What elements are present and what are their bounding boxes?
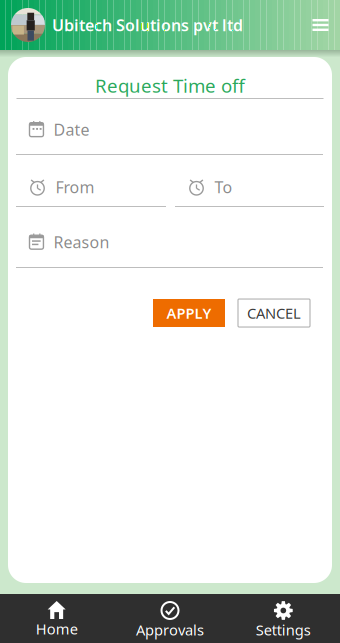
- staticText: CANCEL: [247, 303, 301, 323]
- staticText: Request Time off: [95, 73, 245, 98]
- staticText: APPLY: [166, 303, 211, 323]
- staticText: To: [214, 176, 232, 198]
- button[interactable]: CANCEL: [238, 299, 310, 327]
- staticText: Reason: [53, 231, 109, 253]
- staticText: Date: [53, 119, 89, 140]
- button[interactable]: Home: [0, 594, 113, 643]
- staticText: Ubitech Solutions pvt ltd: [52, 14, 243, 36]
- button[interactable]: Menu: [301, 0, 340, 50]
- button[interactable]: APPLY: [153, 299, 225, 327]
- button[interactable]: Settings: [227, 594, 340, 643]
- staticText: From: [55, 176, 94, 198]
- staticText: Settings: [256, 620, 311, 639]
- staticText: Approvals: [136, 620, 204, 639]
- staticText: Home: [36, 619, 78, 638]
- button[interactable]: Approvals: [113, 594, 227, 643]
